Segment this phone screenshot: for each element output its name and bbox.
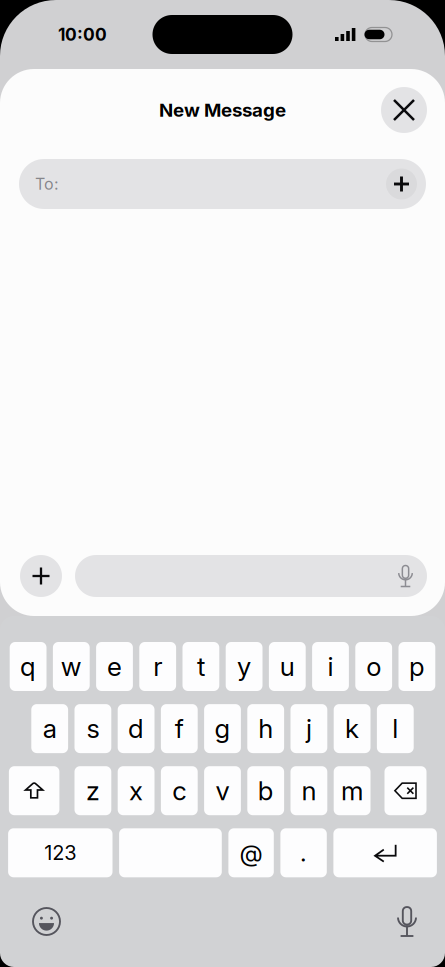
staticText: r [153,651,162,682]
staticText: @ [240,838,263,867]
staticText: i [327,651,333,682]
button[interactable]: Delete [384,766,426,815]
button[interactable]: a [31,704,68,753]
staticText: j [306,713,312,744]
staticText: e [107,651,122,682]
staticText: s [86,713,99,744]
button[interactable]: r [139,642,176,691]
staticText: c [172,775,186,806]
staticText: x [129,775,143,806]
button[interactable]: Add contact [386,168,417,199]
staticText: b [258,775,274,806]
button[interactable]: s [74,704,111,753]
button[interactable]: i [312,642,349,691]
staticText: y [237,651,251,682]
staticText: q [20,651,36,682]
button[interactable]: 123 [8,828,112,877]
button[interactable]: z [74,766,111,815]
button[interactable]: Shift [9,766,59,815]
staticText: h [258,713,273,744]
staticText: m [341,775,363,806]
button[interactable]: Dictate [397,906,417,937]
button[interactable]: q [10,642,46,691]
staticText: 123 [44,841,76,865]
staticText: p [409,651,425,682]
staticText: k [345,713,359,744]
staticText: l [392,713,398,744]
button[interactable]: o [355,642,392,691]
button[interactable]: . [280,828,327,877]
button[interactable]: p [398,642,435,691]
button[interactable]: t [182,642,219,691]
staticText: To: [35,174,59,194]
button[interactable]: j [290,704,327,753]
button[interactable]: x [118,766,154,815]
button[interactable]: Emoji [32,907,61,936]
button[interactable]: m [334,766,370,815]
button[interactable]: v [204,766,241,815]
staticText: z [86,775,100,806]
button[interactable]: h [247,704,284,753]
button[interactable]: u [269,642,306,691]
staticText: t [197,651,205,682]
staticText: n [301,775,316,806]
staticText: w [61,651,82,682]
button[interactable]: Return [333,828,437,877]
button[interactable]: Close [381,87,427,133]
button[interactable]: y [226,642,262,691]
staticText: d [128,713,144,744]
staticText: 10:00 [58,24,107,45]
button[interactable]: Space [119,828,222,877]
staticText: u [280,651,295,682]
button[interactable]: e [96,642,133,691]
button[interactable]: w [53,642,90,691]
staticText: v [215,775,229,806]
button[interactable]: c [161,766,198,815]
staticText: g [214,713,230,744]
staticText: a [43,713,57,744]
staticText: . [300,838,307,867]
button[interactable]: d [118,704,154,753]
staticText: f [175,713,184,744]
button[interactable]: l [377,704,414,753]
button[interactable]: f [161,704,198,753]
button[interactable]: More options [20,555,62,597]
button[interactable]: n [290,766,327,815]
button[interactable]: @ [228,828,274,877]
staticText: New Message [159,99,286,121]
staticText: o [366,651,381,682]
button[interactable]: b [247,766,284,815]
button[interactable]: k [334,704,370,753]
button[interactable]: g [204,704,241,753]
